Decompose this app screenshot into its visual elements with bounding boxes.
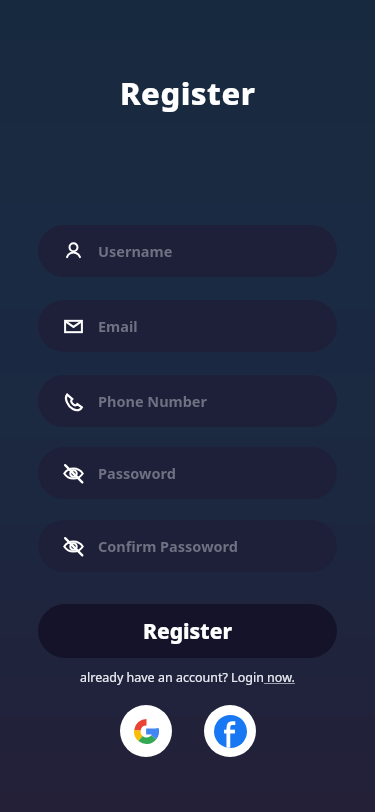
staticText: Passoword [98,463,176,483]
button[interactable]: Username [38,225,337,277]
button[interactable]: Confirm Passoword [38,520,337,572]
button[interactable]: Sign up with Google [120,705,172,757]
staticText: Register [120,72,256,114]
staticText: Username [98,241,173,261]
staticText: Email [98,316,138,336]
staticText: Confirm Passoword [98,536,238,556]
button[interactable]: Sign up with Facebook [204,705,256,757]
staticText: already have an account? Login now. [80,669,295,686]
button[interactable]: Passoword [38,447,337,499]
button[interactable]: Register [38,604,337,658]
button[interactable]: already have an account? Login now. [74,666,301,689]
staticText: Register [143,617,233,646]
button[interactable]: Email [38,300,337,352]
staticText: Phone Number [98,391,207,411]
button[interactable]: Phone Number [38,375,337,427]
